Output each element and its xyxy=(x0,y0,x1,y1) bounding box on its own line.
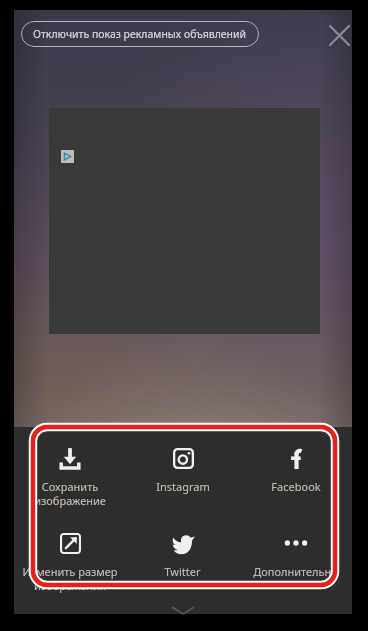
staticText: Instagram xyxy=(156,479,210,494)
staticText: Дополнительно xyxy=(253,564,338,579)
button[interactable]: Дополнительно xyxy=(239,524,352,583)
staticText: Facebook xyxy=(271,479,321,494)
button[interactable]: Facebook xyxy=(239,439,352,498)
button[interactable]: Закрыть xyxy=(322,18,356,52)
button[interactable]: AdChoices xyxy=(61,150,74,163)
staticText: Twitter xyxy=(164,564,201,579)
staticText: Сохранить изображение xyxy=(34,479,106,508)
staticText: Изменить размер изображения xyxy=(22,564,118,593)
button[interactable]: Сохранить изображение xyxy=(14,439,126,512)
button[interactable]: Twitter xyxy=(126,524,239,583)
button[interactable]: Отключить показ рекламных объявлений xyxy=(21,21,259,47)
staticText: Отключить показ рекламных объявлений xyxy=(33,27,247,41)
button[interactable]: Изменить размер изображения xyxy=(14,524,126,597)
button[interactable]: Instagram xyxy=(126,439,239,498)
